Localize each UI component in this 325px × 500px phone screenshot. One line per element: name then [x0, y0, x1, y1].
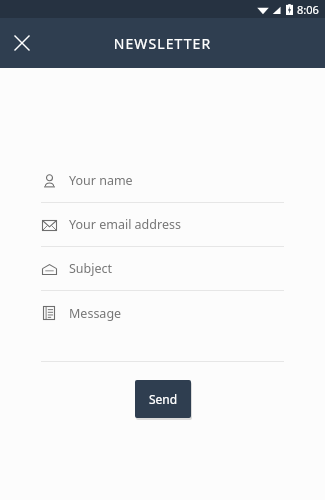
- button[interactable]: Send: [135, 380, 191, 418]
- button[interactable]: Close: [4, 25, 40, 61]
- button[interactable]: Your email address: [0, 203, 325, 246]
- button[interactable]: Subject: [0, 247, 325, 290]
- staticText: Send: [149, 391, 178, 407]
- staticText: NEWSLETTER: [0, 34, 325, 53]
- staticText: Subject: [69, 260, 113, 277]
- staticText: 8:06: [297, 2, 319, 17]
- button[interactable]: Message: [0, 291, 325, 335]
- button[interactable]: Your name: [0, 159, 325, 202]
- staticText: Message: [69, 305, 122, 322]
- staticText: Your name: [69, 172, 133, 189]
- staticText: Your email address: [69, 216, 181, 233]
